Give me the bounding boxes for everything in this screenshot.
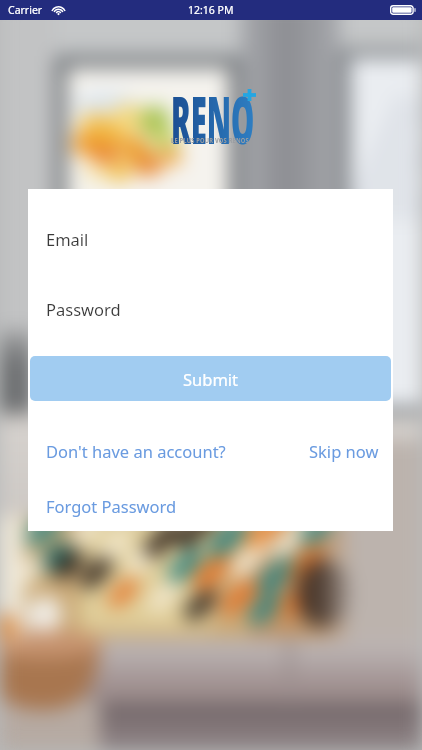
staticText: Carrier (8, 3, 43, 17)
button[interactable]: Don't have an account? (46, 440, 226, 462)
button[interactable]: Password (28, 276, 393, 342)
button[interactable]: Email (28, 206, 393, 272)
staticText: 12:16 PM (188, 3, 234, 17)
staticText: Don't have an account? (46, 440, 226, 462)
staticText: Skip now (309, 440, 379, 462)
staticText: LE PLUS POUR VOS RENOS (171, 135, 249, 145)
staticText: Email (46, 228, 89, 250)
button[interactable]: Submit (30, 356, 391, 401)
button[interactable]: Forgot Password (46, 495, 177, 517)
staticText: Password (46, 298, 121, 320)
staticText: Submit (183, 368, 239, 390)
staticText: RENO (171, 75, 254, 164)
staticText: Forgot Password (46, 495, 177, 517)
button[interactable]: Skip now (309, 440, 379, 462)
